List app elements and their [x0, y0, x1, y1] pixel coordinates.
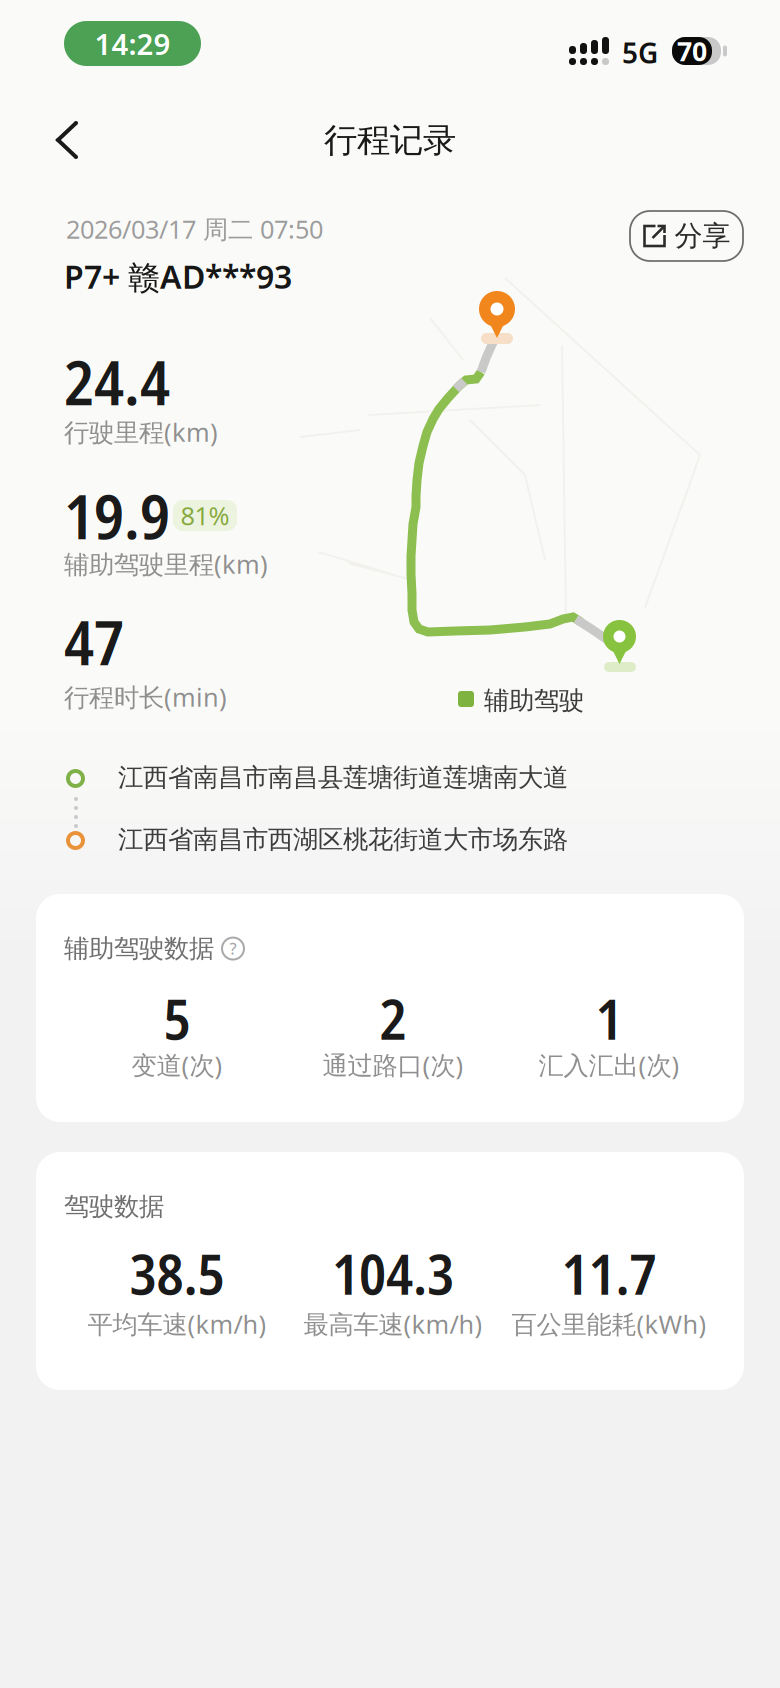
staticText: 分享 [674, 219, 730, 253]
staticText: ? [229, 938, 236, 959]
staticText: 辅助驾驶 [484, 685, 584, 716]
button[interactable]: 分享 [630, 211, 743, 261]
staticText: 19.9 [64, 473, 170, 557]
staticText: 70 [677, 33, 707, 69]
staticText: 38.5 [129, 1235, 224, 1311]
staticText: 47 [64, 599, 124, 683]
staticText: 通过路口(次) [322, 1048, 463, 1082]
staticText: 汇入汇出(次) [538, 1048, 679, 1082]
button[interactable]: Back [38, 110, 98, 170]
staticText: 104.3 [332, 1235, 454, 1311]
staticText: 行程时长(min) [64, 680, 227, 714]
staticText: 辅助驾驶数据 [64, 933, 214, 964]
staticText: 2026/03/17 周二 07:50 [66, 212, 323, 246]
staticText: 辅助驾驶里程(km) [64, 547, 268, 581]
staticText: 11.7 [561, 1235, 656, 1311]
staticText: 24.4 [64, 339, 170, 423]
staticText: 江西省南昌市西湖区桃花街道大市场东路 [118, 824, 568, 855]
staticText: 5 [163, 980, 190, 1056]
staticText: 行驶里程(km) [64, 415, 218, 449]
staticText: 江西省南昌市南昌县莲塘街道莲塘南大道 [118, 762, 568, 793]
staticText: 变道(次) [131, 1048, 222, 1082]
staticText: 行程记录 [324, 120, 456, 161]
staticText: 平均车速(km/h) [87, 1307, 266, 1341]
staticText: 2 [379, 980, 406, 1056]
staticText: 14:29 [94, 24, 170, 63]
button[interactable]: Help [222, 938, 244, 960]
staticText: 1 [595, 980, 622, 1056]
staticText: 驾驶数据 [64, 1191, 164, 1222]
staticText: 5G [622, 34, 658, 71]
staticText: 最高车速(km/h) [303, 1307, 482, 1341]
staticText: 百公里能耗(kWh) [511, 1307, 706, 1341]
staticText: P7+ 赣AD***93 [64, 255, 292, 298]
staticText: 81% [180, 499, 229, 532]
